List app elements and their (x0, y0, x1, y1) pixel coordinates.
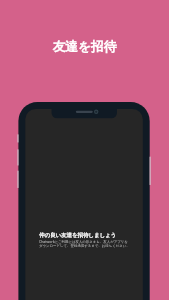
button[interactable]: 友達を招待 (0, 34, 169, 56)
button[interactable]: Invite preview (18, 102, 149, 300)
staticText: ダウンロードして、登録承認するまで、お待ちください。 (39, 244, 130, 248)
staticText: 友達を招待 (0, 39, 169, 55)
staticText: Chatworkにご利用には友人の皆さまも、友人がアプリを (39, 239, 128, 244)
staticText: 仲の良い友達を招待しましょう (39, 232, 117, 239)
